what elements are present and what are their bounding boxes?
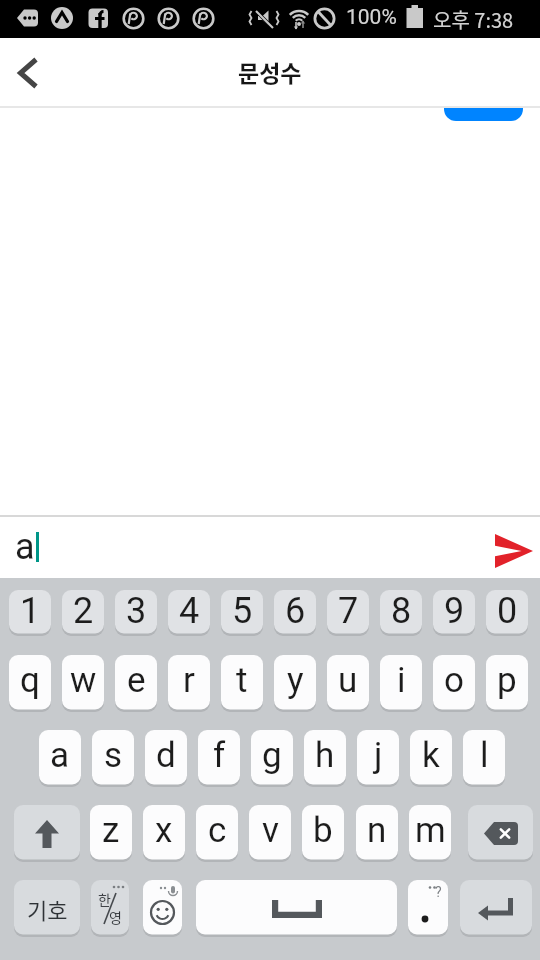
staticText: r [183, 660, 195, 701]
staticText: t [236, 660, 248, 701]
staticText: n [367, 810, 387, 851]
button[interactable]: z [90, 805, 132, 862]
staticText: 100% [346, 5, 397, 30]
staticText: l [480, 735, 489, 776]
button[interactable]: y [274, 655, 316, 712]
staticText: 5 [232, 590, 253, 632]
button[interactable]: g [251, 730, 293, 787]
staticText: s [104, 735, 123, 776]
button[interactable]: r [168, 655, 210, 712]
staticText: 기호 [27, 893, 68, 925]
staticText: h [315, 735, 335, 776]
button[interactable]: w [62, 655, 104, 712]
staticText: a [50, 735, 70, 776]
button[interactable]: ? [408, 880, 448, 937]
button[interactable]: l [463, 730, 505, 787]
button[interactable]: 3 [115, 590, 157, 636]
button[interactable]: o [433, 655, 475, 712]
staticText: d [156, 735, 176, 776]
staticText: p [497, 660, 517, 701]
button[interactable] [196, 880, 397, 937]
button[interactable]: m [409, 805, 451, 862]
button[interactable]: 한 [91, 880, 129, 937]
staticText: 4 [179, 590, 200, 632]
button[interactable]: d [145, 730, 187, 787]
staticText: o [444, 660, 464, 701]
button[interactable]: 5 [221, 590, 263, 636]
staticText: a [15, 526, 35, 568]
button[interactable]: v [249, 805, 291, 862]
button[interactable]: s [92, 730, 134, 787]
button[interactable]: k [410, 730, 452, 787]
button[interactable]: 7 [327, 590, 369, 636]
staticText: k [422, 735, 440, 776]
button[interactable]: q [9, 655, 51, 712]
button[interactable]: 1 [9, 590, 51, 636]
button[interactable]: f [198, 730, 240, 787]
staticText: u [338, 660, 358, 701]
button[interactable]: i [380, 655, 422, 712]
button[interactable]: 6 [274, 590, 316, 636]
staticText: 7 [338, 590, 359, 632]
button[interactable]: 0 [486, 590, 528, 636]
button[interactable] [468, 805, 533, 862]
button[interactable]: p [486, 655, 528, 712]
staticText: f [213, 735, 226, 776]
staticText: b [313, 810, 333, 851]
button[interactable]: n [356, 805, 398, 862]
staticText: 한 [98, 889, 111, 909]
button[interactable]: 2 [62, 590, 104, 636]
staticText: 오후 7:38 [433, 5, 514, 34]
staticText: j [374, 735, 383, 776]
button[interactable]: x [143, 805, 185, 862]
staticText: y [287, 660, 304, 701]
staticText: w [70, 660, 97, 701]
staticText: 0 [497, 590, 518, 632]
staticText: q [20, 660, 40, 701]
button[interactable]: e [115, 655, 157, 712]
button[interactable]: 9 [433, 590, 475, 636]
button[interactable] [143, 880, 182, 937]
staticText: 9 [444, 590, 465, 632]
button[interactable] [14, 805, 80, 862]
button[interactable]: u [327, 655, 369, 712]
button[interactable]: 4 [168, 590, 210, 636]
staticText: g [262, 735, 282, 776]
staticText: i [397, 660, 406, 701]
staticText: z [102, 810, 120, 851]
staticText: ? [435, 884, 442, 900]
staticText: v [262, 810, 279, 851]
button[interactable]: a [39, 730, 81, 787]
staticText: 8 [391, 590, 412, 632]
staticText: 영 [109, 907, 122, 927]
staticText: 6 [285, 590, 306, 632]
button[interactable]: 8 [380, 590, 422, 636]
staticText: x [155, 810, 173, 851]
staticText: 2 [73, 590, 94, 632]
button[interactable]: t [221, 655, 263, 712]
button[interactable]: j [357, 730, 399, 787]
button[interactable]: b [302, 805, 344, 862]
button[interactable] [460, 880, 532, 937]
button[interactable] [495, 534, 533, 568]
staticText: 1 [20, 590, 41, 632]
button[interactable]: h [304, 730, 346, 787]
button[interactable]: 기호 [14, 880, 80, 937]
staticText: e [127, 660, 146, 701]
button[interactable]: c [196, 805, 238, 862]
staticText: 3 [126, 590, 147, 632]
staticText: 문성수 [238, 55, 302, 88]
staticText: m [415, 810, 446, 851]
button[interactable] [8, 49, 48, 97]
staticText: c [208, 810, 227, 851]
